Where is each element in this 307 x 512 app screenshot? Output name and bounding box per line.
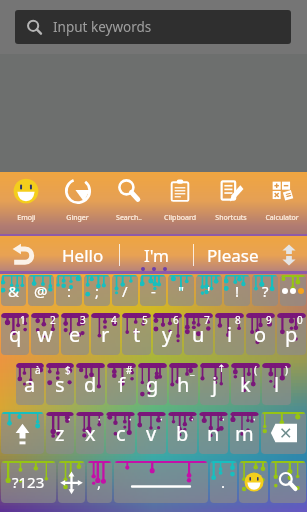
button[interactable]: j [200,363,229,405]
button[interactable]: d [76,363,105,405]
staticText: w [37,321,53,348]
staticText: 6 [173,313,179,327]
staticText: ?123 [12,472,45,492]
button[interactable]: " [168,275,194,306]
staticText: k [240,371,251,398]
button[interactable]: I'm [120,236,193,274]
button[interactable]: n [199,412,228,454]
staticText: # [126,363,133,377]
staticText: @ [34,281,48,301]
staticText: " [178,281,185,301]
button[interactable]: / [112,275,138,306]
button[interactable]: t [122,313,151,355]
button[interactable]: Undo [0,236,46,274]
button[interactable]: o [246,313,275,355]
button[interactable]: Clipboard [154,172,205,236]
button[interactable]: Expand suggestions [271,236,307,274]
staticText: u [192,321,205,348]
button[interactable]: g [138,363,167,405]
button[interactable]: - [140,275,166,306]
button[interactable]: Search.. [103,172,154,236]
button[interactable]: p [277,313,306,355]
staticText: _ [190,363,195,377]
button[interactable]: ' [196,275,222,306]
staticText: y [162,321,173,348]
button[interactable]: Shortcuts [205,172,256,236]
staticText: j [212,371,218,398]
button[interactable]: b [168,412,197,454]
staticText: · [160,412,163,426]
button[interactable]: l [262,363,291,405]
staticText: q [9,321,22,348]
staticText: Emoji [17,213,36,223]
button[interactable]: k [231,363,260,405]
button[interactable]: z [46,412,74,454]
staticText: o [254,321,267,348]
button[interactable]: Switch keyboard [58,461,85,503]
staticText: v [146,420,157,447]
staticText: · [222,412,225,426]
staticText: 0 [297,313,303,327]
button[interactable]: Backspace [261,412,306,454]
button[interactable]: i [215,313,244,355]
staticText: 9 [266,313,272,327]
button[interactable]: Space [114,461,208,503]
staticText: ; [95,281,100,301]
button[interactable]: : [56,275,82,306]
button[interactable]: q [1,313,29,355]
staticText: p [285,321,298,348]
staticText: 2 [50,313,56,327]
staticText: - [151,281,156,301]
button[interactable]: u [184,313,213,355]
button[interactable]: ? [252,275,278,306]
button[interactable]: r [91,313,120,355]
staticText: · [129,412,132,426]
button[interactable]: More symbols [280,275,306,306]
button[interactable]: . [210,461,237,503]
button[interactable]: @ [28,275,54,306]
button[interactable]: ! [224,275,250,306]
button[interactable]: c [106,412,135,454]
staticText: 5 [142,313,148,327]
button[interactable]: Input keywords [15,10,291,44]
button[interactable]: f [107,363,136,405]
staticText: n [207,420,220,447]
staticText: Please [207,244,259,267]
button[interactable]: Emoji [239,461,268,503]
staticText: ) [285,363,288,377]
button[interactable]: v [137,412,166,454]
button[interactable]: ; [84,275,110,306]
staticText: Clipboard [164,213,196,223]
button[interactable]: , [87,461,112,503]
staticText: Search.. [116,213,142,223]
button[interactable]: a [16,363,44,405]
button[interactable]: h [169,363,198,405]
staticText: 7 [204,313,210,327]
staticText: I'm [144,244,169,267]
button[interactable]: m [230,412,259,454]
staticText: Hello [62,244,104,267]
button[interactable]: Please [194,236,271,274]
button[interactable]: Emoji [0,172,52,236]
button[interactable]: e [61,313,89,355]
button[interactable]: & [1,275,26,306]
staticText: · [253,412,256,426]
button[interactable]: s [46,363,74,405]
staticText: a [24,371,36,398]
button[interactable]: w [31,313,59,355]
button[interactable]: y [153,313,182,355]
staticText: z [55,420,65,447]
staticText: ( [254,363,257,377]
button[interactable]: Ginger [52,172,103,236]
staticText: . [221,472,226,492]
staticText: g [146,371,159,398]
staticText: ? [262,281,269,301]
staticText: 3 [80,313,86,327]
button[interactable]: x [76,412,104,454]
button[interactable]: Calculator [256,172,307,236]
button[interactable]: Shift [1,412,44,454]
button[interactable]: Search [270,461,306,503]
button[interactable]: Hello [46,236,119,274]
button[interactable]: ?123 [1,461,56,503]
staticText: 8 [235,313,241,327]
